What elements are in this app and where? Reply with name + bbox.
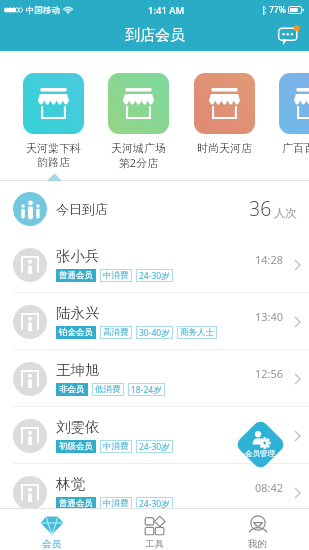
staticText: 会员 [42,538,61,550]
button[interactable]: 会员 [0,509,103,550]
button[interactable]: 林觉 [0,464,309,521]
button[interactable]: 刘雯依 [0,407,309,464]
button[interactable]: 工具 [103,509,206,550]
staticText: 中消费 [103,498,129,509]
button[interactable]: 时尚天河店 [181,73,267,155]
staticText: 铂金会员 [59,327,93,338]
staticText: 24-30岁 [139,270,170,282]
staticText: 商务人士 [180,327,214,338]
staticText: 我的 [248,538,267,550]
staticText: 林觉 [56,475,85,493]
button[interactable]: 我的 [206,509,309,550]
staticText: 中消费 [103,441,129,452]
staticText: 13:40 [255,309,284,324]
staticText: 会员管理 [245,449,275,458]
staticText: 天河棠下科 韵路店 [26,141,81,169]
button[interactable]: 张小兵 [0,236,309,293]
staticText: 人次 [274,206,297,220]
staticText: 77% [269,4,286,16]
staticText: 36 [249,195,272,222]
staticText: 广百百货店 [282,141,309,155]
staticText: 12:56 [255,366,284,381]
staticText: 高消费 [103,327,129,338]
staticText: 08:42 [255,480,284,495]
button[interactable]: 广百百货店 [266,73,309,155]
staticText: 24-30岁 [139,498,170,510]
staticText: 到店会员 [125,26,185,45]
staticText: 24-30岁 [139,441,170,453]
staticText: 工具 [145,538,164,550]
button[interactable]: 王坤旭 [0,350,309,407]
staticText: 张小兵 [56,247,100,265]
staticText: 王坤旭 [56,361,100,379]
staticText: 天河城广场 第2分店 [111,141,166,170]
staticText: 低消费 [95,384,121,395]
staticText: 30-40岁 [139,327,170,339]
staticText: 18-24岁 [131,384,162,396]
button[interactable]: Messages [275,23,301,49]
staticText: 1:41 AM [148,4,185,17]
staticText: 今日到店 [56,201,108,217]
staticText: 非会员 [59,384,85,395]
button[interactable]: 天河城广场 第2分店 [95,73,181,170]
staticText: 陆永兴 [56,304,100,322]
staticText: 14:28 [255,252,284,267]
staticText: 中消费 [103,270,129,281]
button[interactable]: 今日到店 [0,181,309,236]
button[interactable]: 会员管理 [232,416,288,472]
staticText: 普通会员 [59,498,93,509]
staticText: 时尚天河店 [197,141,252,155]
staticText: 刘雯依 [56,418,100,436]
button[interactable]: 天河棠下科 韵路店 [10,73,96,169]
button[interactable]: 陆永兴 [0,293,309,350]
staticText: 中国移动 [26,5,60,16]
staticText: 普通会员 [59,270,93,281]
staticText: 初级会员 [59,441,93,452]
